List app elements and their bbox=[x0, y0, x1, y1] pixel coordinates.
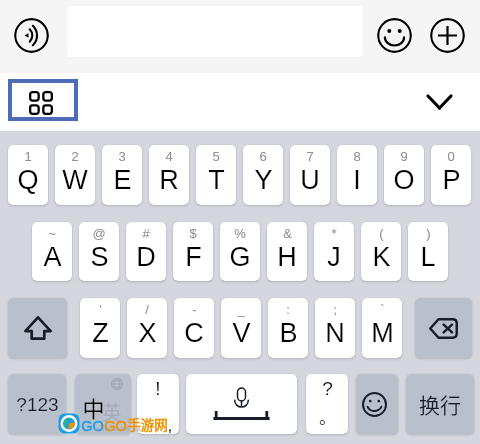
staticText: D bbox=[136, 242, 156, 272]
button[interactable]: % bbox=[220, 222, 260, 281]
staticText: ( bbox=[379, 226, 384, 241]
staticText: H bbox=[277, 242, 297, 272]
button[interactable]: ' bbox=[80, 298, 120, 358]
staticText: O bbox=[393, 165, 415, 195]
button[interactable]: 4 bbox=[149, 145, 189, 205]
staticText: 手游网 bbox=[127, 414, 168, 434]
button[interactable]: ! bbox=[137, 374, 179, 434]
staticText: Q bbox=[17, 165, 39, 195]
staticText: U bbox=[300, 165, 320, 195]
button[interactable]: $ bbox=[173, 222, 213, 281]
button[interactable]: 3 bbox=[102, 145, 142, 205]
staticText: L bbox=[420, 242, 436, 272]
button[interactable]: ( bbox=[361, 222, 401, 281]
button[interactable]: ` bbox=[362, 298, 402, 358]
button[interactable]: Hide keyboard bbox=[423, 89, 456, 122]
staticText: 3 bbox=[118, 149, 126, 164]
button[interactable]: ?123 bbox=[8, 374, 66, 434]
staticText: $ bbox=[189, 226, 197, 241]
button[interactable]: 2 bbox=[55, 145, 95, 205]
staticText: % bbox=[234, 226, 246, 241]
staticText: / bbox=[145, 302, 149, 317]
button[interactable]: / bbox=[127, 298, 167, 358]
staticText: ? bbox=[322, 378, 333, 399]
button[interactable]: @ bbox=[79, 222, 119, 281]
staticText: & bbox=[283, 226, 292, 241]
staticText: Y bbox=[254, 165, 273, 195]
button[interactable]: Backspace bbox=[415, 298, 472, 358]
staticText: S bbox=[90, 242, 109, 272]
button[interactable]: & bbox=[267, 222, 307, 281]
staticText: : bbox=[286, 302, 290, 317]
staticText: F bbox=[185, 242, 202, 272]
button[interactable]: # bbox=[126, 222, 166, 281]
staticText: , bbox=[168, 418, 172, 434]
button[interactable]: 9 bbox=[384, 145, 424, 205]
staticText: _ bbox=[237, 302, 245, 317]
button[interactable]: Space bbox=[186, 374, 297, 434]
staticText: 0 bbox=[447, 149, 455, 164]
button[interactable]: Voice input bbox=[14, 18, 49, 53]
button[interactable]: 6 bbox=[243, 145, 283, 205]
staticText: X bbox=[138, 318, 157, 348]
staticText: ~ bbox=[48, 226, 56, 241]
staticText: 中 bbox=[82, 391, 105, 423]
staticText: W bbox=[62, 165, 88, 195]
staticText: GO bbox=[104, 418, 127, 434]
staticText: 5 bbox=[212, 149, 220, 164]
staticText: @ bbox=[92, 226, 106, 241]
staticText: I bbox=[353, 165, 361, 195]
button[interactable]: Emoji bbox=[377, 18, 412, 53]
button[interactable]: ? bbox=[306, 374, 348, 434]
staticText: C bbox=[184, 318, 204, 348]
staticText: 8 bbox=[353, 149, 361, 164]
staticText: ` bbox=[380, 302, 385, 317]
button[interactable]: ) bbox=[408, 222, 448, 281]
staticText: 换行 bbox=[419, 389, 461, 419]
staticText: , bbox=[156, 410, 161, 429]
staticText: 6 bbox=[259, 149, 267, 164]
button[interactable]: 7 bbox=[290, 145, 330, 205]
staticText: 。 bbox=[319, 404, 336, 429]
staticText: Z bbox=[92, 318, 109, 348]
button[interactable]: Switch language bbox=[75, 374, 131, 434]
button[interactable]: * bbox=[314, 222, 354, 281]
button[interactable]: 1 bbox=[8, 145, 48, 205]
staticText: GO bbox=[81, 418, 104, 434]
staticText: G bbox=[229, 242, 251, 272]
button[interactable]: 8 bbox=[337, 145, 377, 205]
button[interactable]: Add bbox=[430, 18, 465, 53]
staticText: ) bbox=[426, 226, 431, 241]
staticText: 7 bbox=[306, 149, 314, 164]
staticText: ! bbox=[155, 378, 161, 399]
staticText: 2 bbox=[71, 149, 79, 164]
staticText: T bbox=[208, 165, 225, 195]
button[interactable]: Emoji bbox=[356, 374, 398, 434]
staticText: W W W . G O G O . C N bbox=[95, 427, 140, 432]
staticText: A bbox=[43, 242, 62, 272]
button[interactable]: ; bbox=[315, 298, 355, 358]
button[interactable]: Shift bbox=[8, 298, 67, 358]
button[interactable]: _ bbox=[221, 298, 261, 358]
button[interactable]: - bbox=[174, 298, 214, 358]
staticText: 英 bbox=[102, 398, 122, 426]
staticText: * bbox=[331, 226, 337, 241]
staticText: ?123 bbox=[16, 394, 59, 415]
staticText: B bbox=[279, 318, 298, 348]
staticText: 4 bbox=[165, 149, 173, 164]
button[interactable]: 5 bbox=[196, 145, 236, 205]
button[interactable]: 0 bbox=[431, 145, 471, 205]
staticText: ; bbox=[333, 302, 337, 317]
staticText: V bbox=[232, 318, 251, 348]
button[interactable]: Keyboard layouts bbox=[12, 83, 74, 117]
staticText: P bbox=[442, 165, 461, 195]
button[interactable]: ~ bbox=[32, 222, 72, 281]
staticText: 1 bbox=[24, 149, 32, 164]
button[interactable]: 换行 bbox=[406, 374, 474, 434]
staticText: M bbox=[371, 318, 394, 348]
staticText: N bbox=[325, 318, 345, 348]
button[interactable]: : bbox=[268, 298, 308, 358]
staticText: 9 bbox=[400, 149, 408, 164]
staticText: R bbox=[159, 165, 179, 195]
